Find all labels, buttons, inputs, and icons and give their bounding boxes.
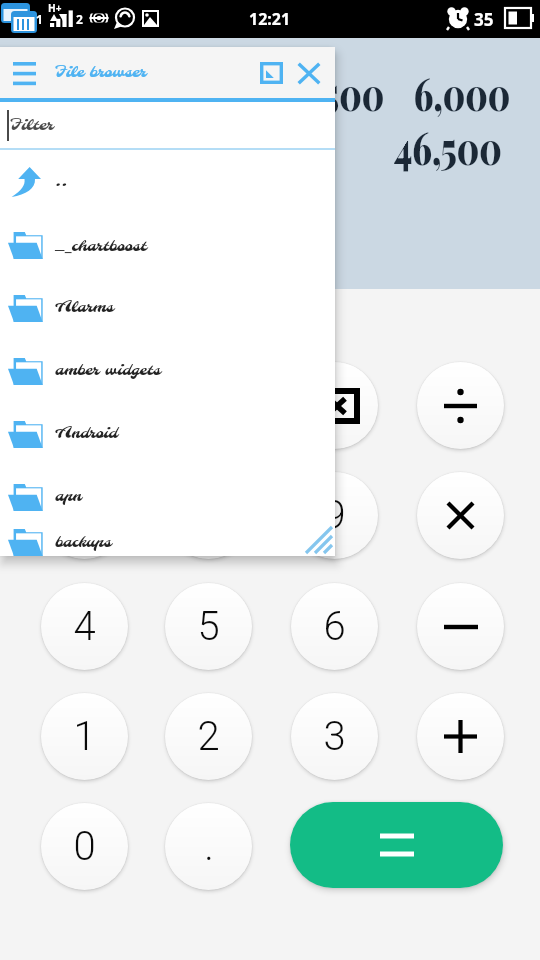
staticText: 12:21 <box>249 8 291 30</box>
staticText: 7 <box>73 492 96 539</box>
staticText: Alarms <box>55 298 114 317</box>
button[interactable]: Minus <box>417 583 504 670</box>
staticText: Android <box>55 424 118 443</box>
staticText: backups <box>55 533 112 552</box>
staticText: 1 <box>73 713 96 760</box>
button[interactable]: Three <box>291 693 378 780</box>
button[interactable]: Multiply <box>417 472 504 559</box>
staticText: . <box>204 823 214 870</box>
button[interactable]: Plus <box>417 693 504 780</box>
button[interactable]: Clear <box>41 362 128 449</box>
button[interactable]: Android <box>0 402 335 465</box>
staticText: 35 <box>474 8 494 31</box>
button[interactable]: Equals <box>290 802 503 888</box>
button[interactable]: Filter <box>0 102 335 148</box>
staticText: 4 <box>73 603 96 650</box>
staticText: .. <box>55 172 68 191</box>
button[interactable]: One <box>41 693 128 780</box>
staticText: amber widgets <box>55 361 161 380</box>
staticText: 2 <box>76 11 83 27</box>
button[interactable]: Alarms <box>0 276 335 339</box>
staticText: 3 <box>323 713 346 760</box>
staticText: H+ <box>48 1 62 15</box>
button[interactable]: Five <box>165 583 252 670</box>
staticText: C <box>72 382 98 429</box>
staticText: 6 <box>323 603 346 650</box>
button[interactable]: apn <box>0 465 335 528</box>
button[interactable]: Maximize <box>256 51 287 95</box>
button[interactable]: __chartboost <box>0 213 335 276</box>
staticText: 0 <box>73 823 96 870</box>
staticText: __chartboost <box>55 234 147 256</box>
button[interactable]: Close <box>295 51 323 95</box>
button[interactable]: Decimal point <box>165 803 252 890</box>
button[interactable]: Seven <box>41 472 128 559</box>
staticText: 2 <box>197 713 220 760</box>
button[interactable]: Zero <box>41 803 128 890</box>
button[interactable]: Two <box>165 693 252 780</box>
staticText: 9,500 6,000 <box>295 62 510 122</box>
button[interactable]: Eight <box>165 472 252 559</box>
button[interactable]: Six <box>291 583 378 670</box>
button[interactable]: amber widgets <box>0 339 335 402</box>
button[interactable]: Four <box>41 583 128 670</box>
button[interactable]: backups <box>0 528 335 556</box>
button[interactable]: Divide <box>417 362 504 449</box>
button[interactable]: Backspace <box>291 362 378 449</box>
staticText: 46,500 <box>394 116 502 176</box>
button[interactable]: Nine <box>291 472 378 559</box>
staticText: 1 <box>36 11 43 27</box>
staticText: apn <box>55 487 82 506</box>
staticText: 9 <box>323 492 346 539</box>
staticText: File browser <box>55 63 146 82</box>
staticText: 5 <box>197 603 220 650</box>
button[interactable]: .. <box>0 150 335 213</box>
staticText: Filter <box>10 116 54 136</box>
button[interactable]: Menu <box>8 51 41 95</box>
